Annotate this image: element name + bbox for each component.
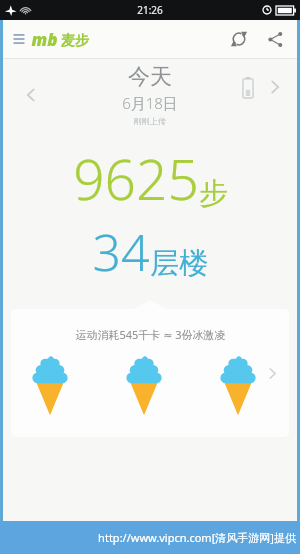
button[interactable]: 运动消耗545千卡 ≈ 3份冰激凌 bbox=[11, 309, 289, 437]
staticText: 层楼 bbox=[150, 245, 208, 282]
staticText: 运动消耗545千卡 ≈ 3份冰激凌 bbox=[75, 327, 226, 342]
staticText: mb bbox=[31, 28, 58, 51]
button[interactable]: Device battery bbox=[235, 74, 261, 100]
button[interactable]: Previous day bbox=[15, 79, 47, 111]
staticText: 6月18日 bbox=[122, 93, 178, 113]
staticText: 今天 bbox=[128, 63, 172, 91]
button[interactable]: Refresh bbox=[224, 24, 254, 54]
button[interactable]: More details bbox=[259, 360, 285, 386]
staticText: http://www.vipcn.com[清风手游网]提供 bbox=[98, 530, 296, 545]
staticText: 21:26 bbox=[137, 3, 163, 17]
button[interactable]: Share bbox=[260, 24, 290, 54]
button[interactable]: Menu bbox=[8, 28, 30, 50]
staticText: 麦步 bbox=[61, 32, 89, 50]
button[interactable]: Next day bbox=[261, 73, 289, 101]
staticText: 步 bbox=[199, 175, 228, 212]
staticText: 34 bbox=[92, 218, 150, 286]
staticText: 刚刚上传 bbox=[134, 116, 166, 126]
staticText: 9625 bbox=[73, 141, 199, 216]
